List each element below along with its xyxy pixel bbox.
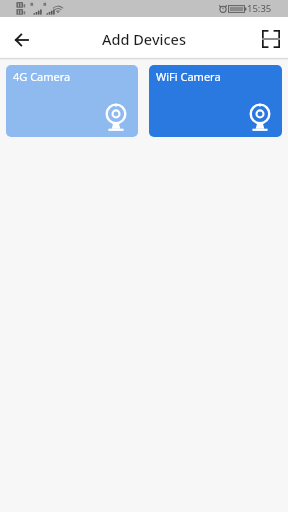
button[interactable]: Scan QR code — [253, 21, 288, 56]
staticText: 4G Camera — [13, 69, 71, 84]
button[interactable]: Back — [0, 18, 42, 60]
button[interactable]: 4G Camera — [6, 65, 138, 137]
staticText: Add Devices — [102, 29, 186, 49]
staticText: WiFi Camera — [156, 69, 221, 84]
button[interactable]: WiFi Camera — [149, 65, 282, 137]
staticText: 15:35 — [247, 2, 272, 15]
